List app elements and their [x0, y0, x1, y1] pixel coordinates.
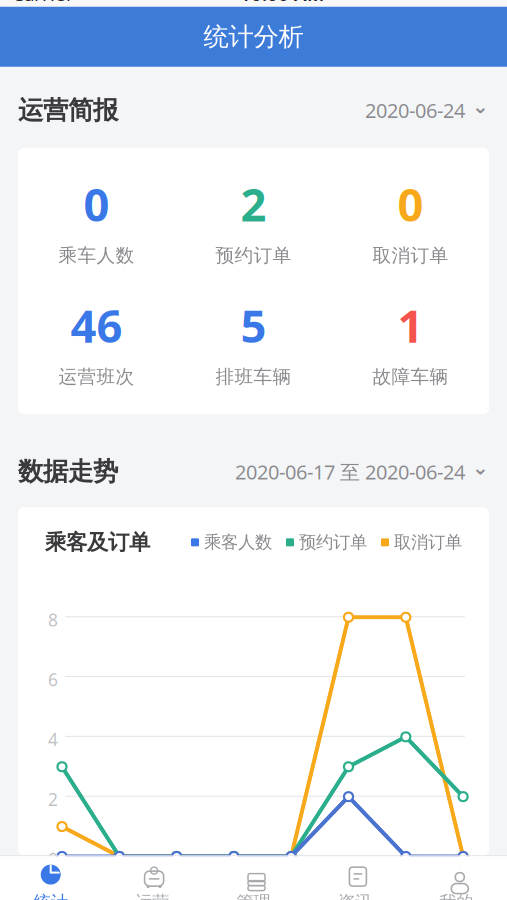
staticText: 10:00 AM: [240, 0, 324, 6]
staticText: 管理: [236, 892, 270, 900]
staticText: 预约订单: [215, 244, 291, 267]
staticText: 预约订单: [299, 532, 367, 553]
staticText: 取消订单: [394, 532, 462, 553]
staticText: 6: [48, 668, 58, 691]
staticText: 乘车人数: [58, 244, 134, 267]
staticText: 乘客及订单: [45, 529, 150, 555]
button[interactable]: 我的: [406, 860, 507, 900]
staticText: 数据走势: [18, 456, 118, 487]
staticText: 统计分析: [203, 21, 303, 52]
staticText: 8: [48, 608, 58, 631]
staticText: 排班车辆: [215, 365, 291, 388]
staticText: 故障车辆: [372, 365, 448, 388]
staticText: 6.19: [157, 866, 188, 888]
staticText: 6.22: [329, 866, 360, 888]
staticText: 2: [48, 788, 58, 811]
staticText: 0: [397, 174, 423, 234]
staticText: 乘客人数: [204, 532, 272, 553]
staticText: 我的: [439, 892, 473, 900]
staticText: 5: [240, 295, 266, 355]
button[interactable]: 统计: [0, 860, 101, 900]
staticText: ⌄: [472, 95, 489, 118]
staticText: 4: [48, 728, 58, 751]
staticText: 2020-06-24: [365, 97, 465, 124]
staticText: 统计: [34, 892, 68, 900]
staticText: Carrier: [12, 0, 74, 6]
staticText: 1: [397, 295, 423, 355]
staticText: 运营班次: [58, 365, 134, 388]
button[interactable]: 管理: [203, 860, 304, 900]
staticText: 6.17: [42, 866, 73, 888]
staticText: ⌄: [472, 456, 489, 479]
staticText: 0: [83, 174, 109, 234]
staticText: 6.24: [444, 866, 475, 888]
staticText: 0: [48, 847, 58, 870]
staticText: 运营: [135, 892, 169, 900]
button[interactable]: 2020-06-17 至 2020-06-24: [235, 458, 489, 485]
staticText: 2: [240, 174, 266, 234]
button[interactable]: 2020-06-24: [365, 97, 489, 124]
button[interactable]: 运营: [101, 860, 203, 900]
staticText: 46: [70, 295, 122, 355]
staticText: 资讯: [338, 892, 372, 900]
staticText: 2020-06-17 至 2020-06-24: [235, 458, 465, 485]
staticText: 运营简报: [18, 95, 118, 126]
staticText: 取消订单: [372, 244, 448, 267]
button[interactable]: 资讯: [304, 860, 406, 900]
